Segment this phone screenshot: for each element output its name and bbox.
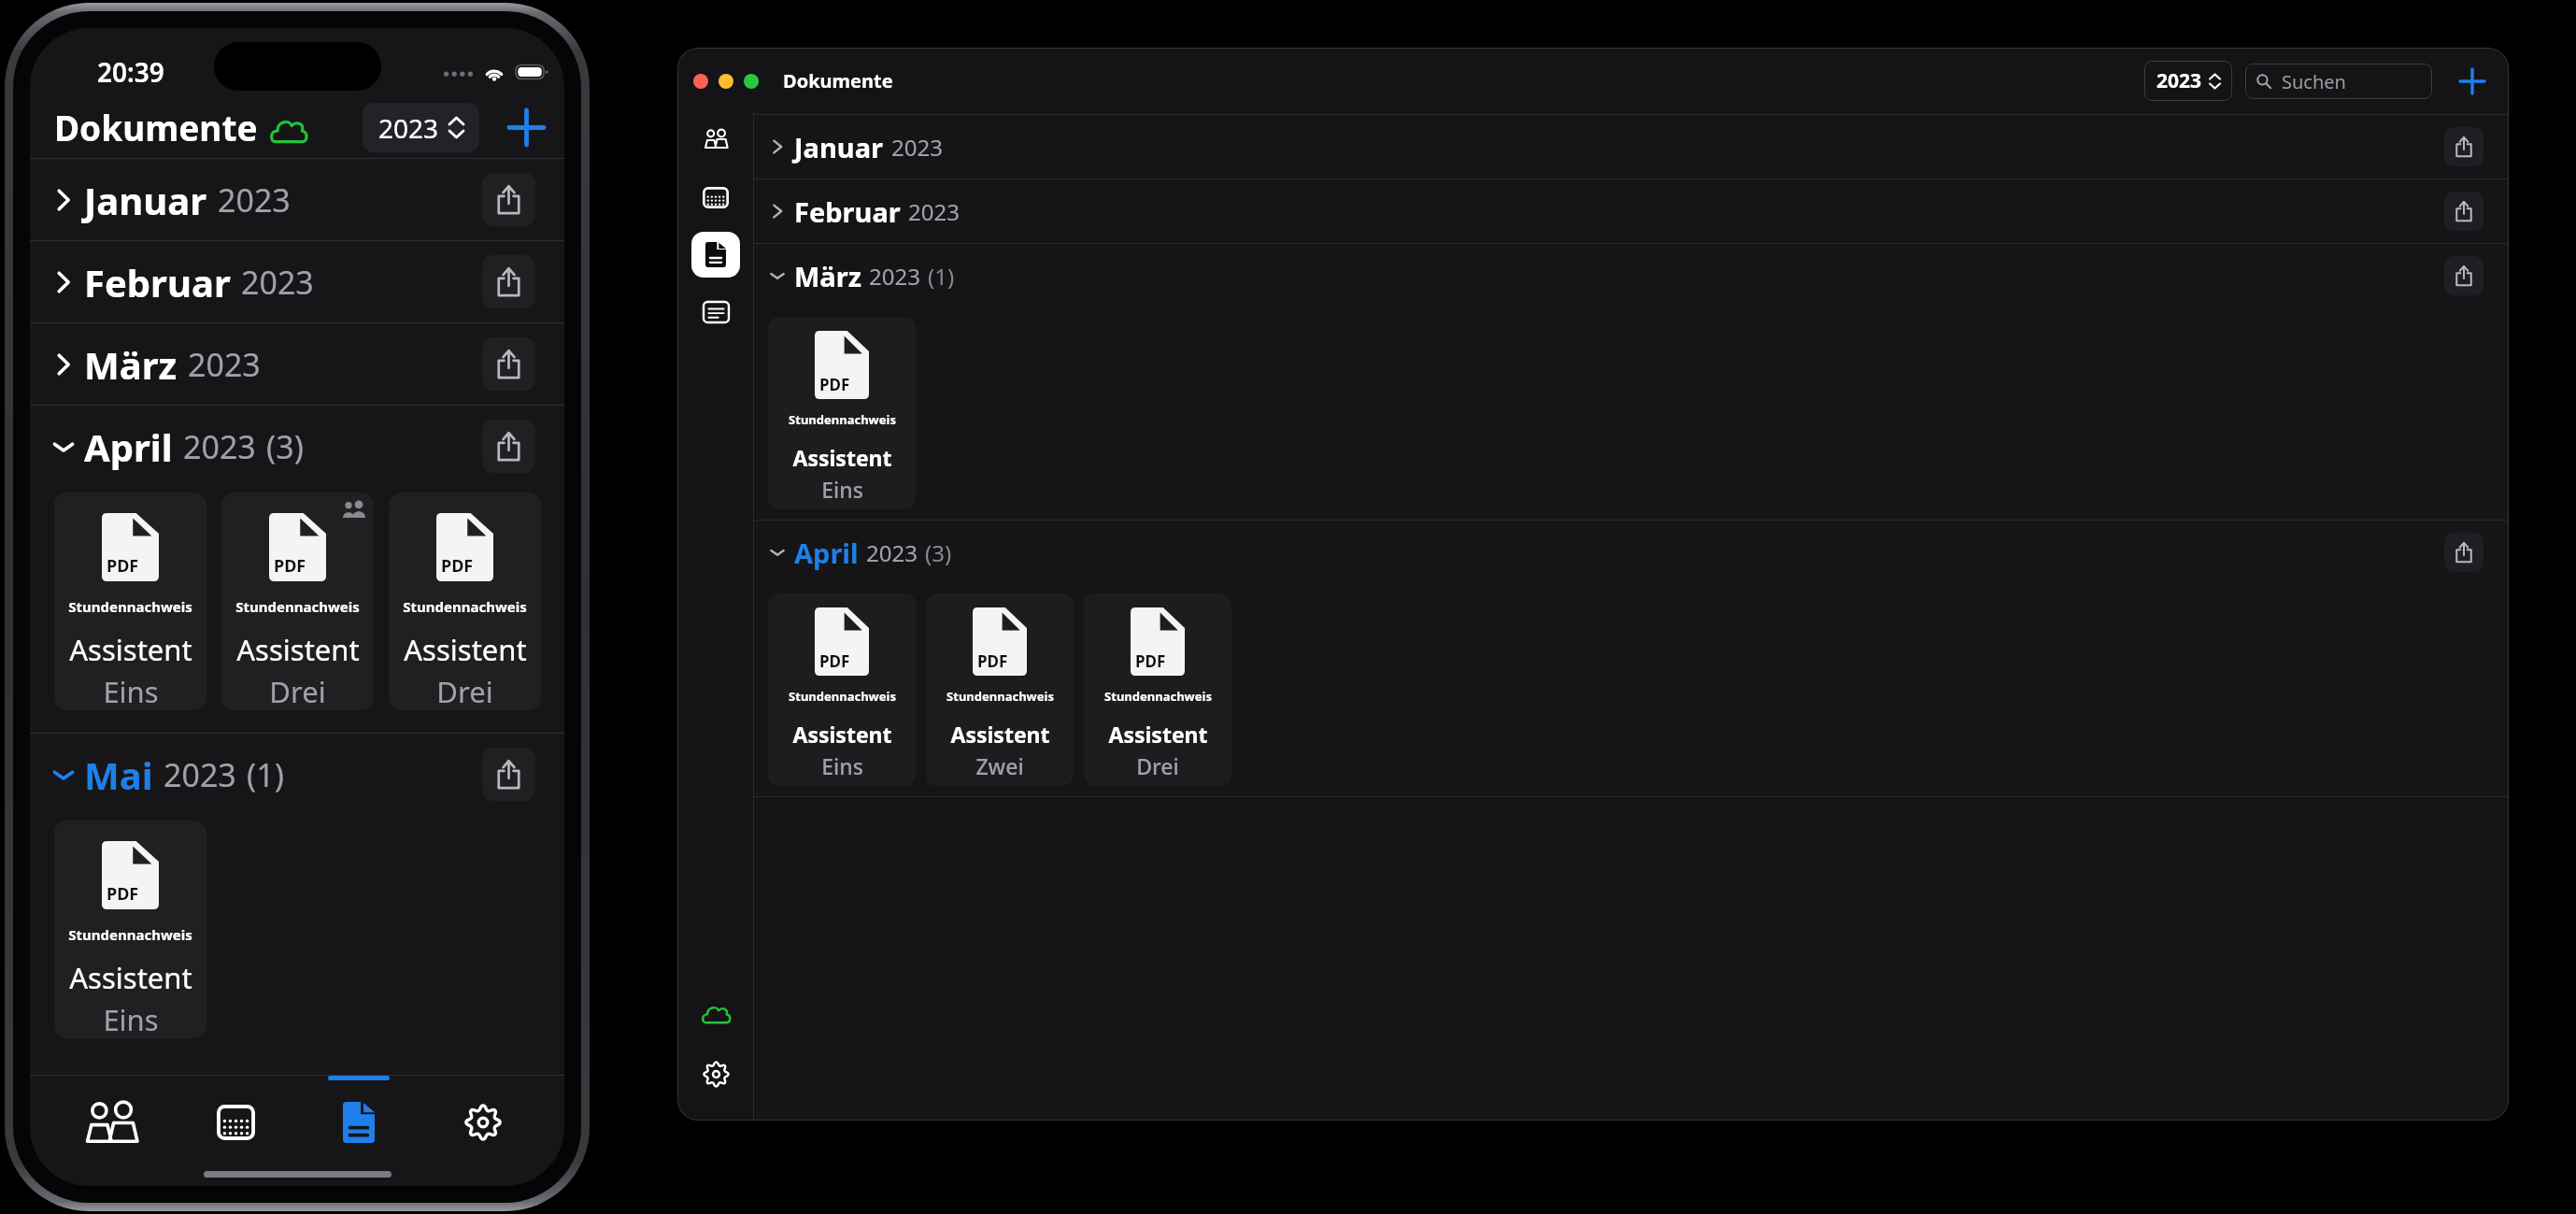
staticText: Stundennachweis — [68, 925, 192, 944]
button[interactable]: Mai — [30, 734, 564, 815]
staticText: Assistent — [404, 630, 527, 669]
button[interactable]: Kontakte — [691, 116, 740, 162]
button[interactable]: Teilen — [2444, 256, 2483, 295]
staticText: PDF — [819, 374, 850, 395]
staticText: 2023 — [866, 537, 918, 568]
staticText: PDF — [441, 554, 474, 578]
staticText: PDF — [977, 650, 1008, 672]
staticText: Eins — [103, 672, 159, 710]
button[interactable]: 2023 — [2144, 61, 2232, 101]
staticText: Stundennachweis — [1104, 688, 1212, 705]
staticText: 20:39 — [97, 54, 164, 90]
button[interactable]: Dokumente — [316, 1079, 402, 1165]
staticText: Assistent — [69, 958, 192, 997]
button[interactable]: April — [754, 521, 2509, 584]
staticText: Februar — [84, 257, 231, 307]
staticText: (3) — [266, 425, 304, 468]
staticText: Stundennachweis — [403, 597, 527, 616]
staticText: (3) — [925, 537, 952, 568]
staticText: 2023 — [183, 425, 256, 468]
button[interactable]: 2023 — [363, 103, 479, 152]
button[interactable]: Teilen — [482, 420, 535, 473]
staticText: Februar — [794, 193, 901, 230]
staticText: PDF — [274, 554, 306, 578]
staticText: Eins — [821, 751, 863, 780]
staticText: Stundennachweis — [789, 411, 896, 428]
button[interactable]: Hinzufügen — [2456, 65, 2488, 97]
button[interactable]: PDF — [768, 593, 916, 786]
button[interactable]: April — [30, 406, 564, 487]
staticText: Eins — [103, 1000, 159, 1038]
button[interactable]: März — [754, 244, 2509, 307]
staticText: Suchen — [2282, 69, 2346, 94]
button[interactable]: Schließen — [693, 74, 708, 89]
button[interactable]: PDF — [54, 821, 206, 1038]
staticText: Drei — [436, 672, 493, 710]
button[interactable]: Maximieren — [744, 74, 759, 89]
button[interactable]: Einstellungen — [440, 1079, 526, 1165]
staticText: 2023 — [218, 179, 291, 221]
staticText: 2023 — [241, 261, 314, 304]
staticText: 2023 — [378, 110, 439, 146]
button[interactable]: Teilen — [482, 255, 535, 308]
staticText: Assistent — [69, 630, 192, 669]
staticText: Assistent — [236, 630, 360, 669]
button[interactable]: Teilen — [482, 748, 535, 801]
staticText: Stundennachweis — [946, 688, 1054, 705]
staticText: Drei — [269, 672, 326, 710]
button[interactable]: PDF — [389, 493, 541, 710]
staticText: Assistent — [792, 443, 892, 472]
button[interactable]: Teilen — [482, 337, 535, 391]
staticText: (1) — [928, 261, 955, 292]
button[interactable]: Januar — [754, 115, 2509, 179]
button[interactable]: PDF — [926, 593, 1074, 786]
button[interactable]: Hinzufügen — [500, 101, 552, 153]
staticText: Drei — [1136, 751, 1179, 780]
button[interactable]: Kontakte — [68, 1079, 154, 1165]
button[interactable]: März — [30, 323, 564, 405]
button[interactable]: PDF — [54, 493, 206, 710]
staticText: Stundennachweis — [235, 597, 360, 616]
button[interactable]: Kalender — [192, 1079, 278, 1165]
staticText: Zwei — [975, 751, 1024, 780]
button[interactable]: Einstellungen — [694, 1052, 737, 1095]
button[interactable]: Kalender — [691, 175, 740, 221]
button[interactable]: PDF — [1084, 593, 1231, 786]
button[interactable]: PDF — [768, 317, 916, 509]
button[interactable]: Januar — [30, 159, 564, 240]
staticText: Januar — [794, 129, 884, 165]
staticText: Dokumente — [54, 104, 258, 150]
staticText: Mai — [84, 750, 153, 800]
staticText: April — [794, 535, 859, 571]
staticText: März — [84, 339, 178, 390]
button[interactable]: Teilen — [2444, 192, 2483, 231]
staticText: PDF — [819, 650, 850, 672]
staticText: Assistent — [792, 720, 892, 749]
button[interactable]: Februar — [754, 179, 2509, 243]
staticText: 2023 — [869, 261, 920, 292]
button[interactable]: Cloud — [694, 993, 737, 1035]
staticText: Dokumente — [783, 68, 893, 93]
staticText: Stundennachweis — [68, 597, 192, 616]
staticText: PDF — [1135, 650, 1166, 672]
staticText: April — [84, 421, 173, 472]
button[interactable]: Teilen — [2444, 533, 2483, 572]
button[interactable]: Berichte — [691, 289, 740, 335]
staticText: 2023 — [164, 753, 236, 796]
staticText: Januar — [84, 175, 207, 225]
staticText: Assistent — [1108, 720, 1208, 749]
button[interactable]: Suchen — [2245, 64, 2432, 99]
staticText: 2023 — [908, 196, 960, 227]
staticText: 2023 — [2156, 67, 2202, 94]
button[interactable]: PDF — [221, 493, 374, 710]
button[interactable]: Teilen — [482, 173, 535, 226]
staticText: März — [794, 258, 861, 294]
button[interactable]: Dokumente — [691, 232, 740, 278]
staticText: (1) — [247, 753, 284, 796]
staticText: 2023 — [188, 343, 261, 386]
button[interactable]: Teilen — [2444, 127, 2483, 166]
button[interactable]: Februar — [30, 241, 564, 322]
staticText: PDF — [107, 882, 139, 906]
staticText: PDF — [107, 554, 139, 578]
button[interactable]: Minimieren — [719, 74, 733, 89]
